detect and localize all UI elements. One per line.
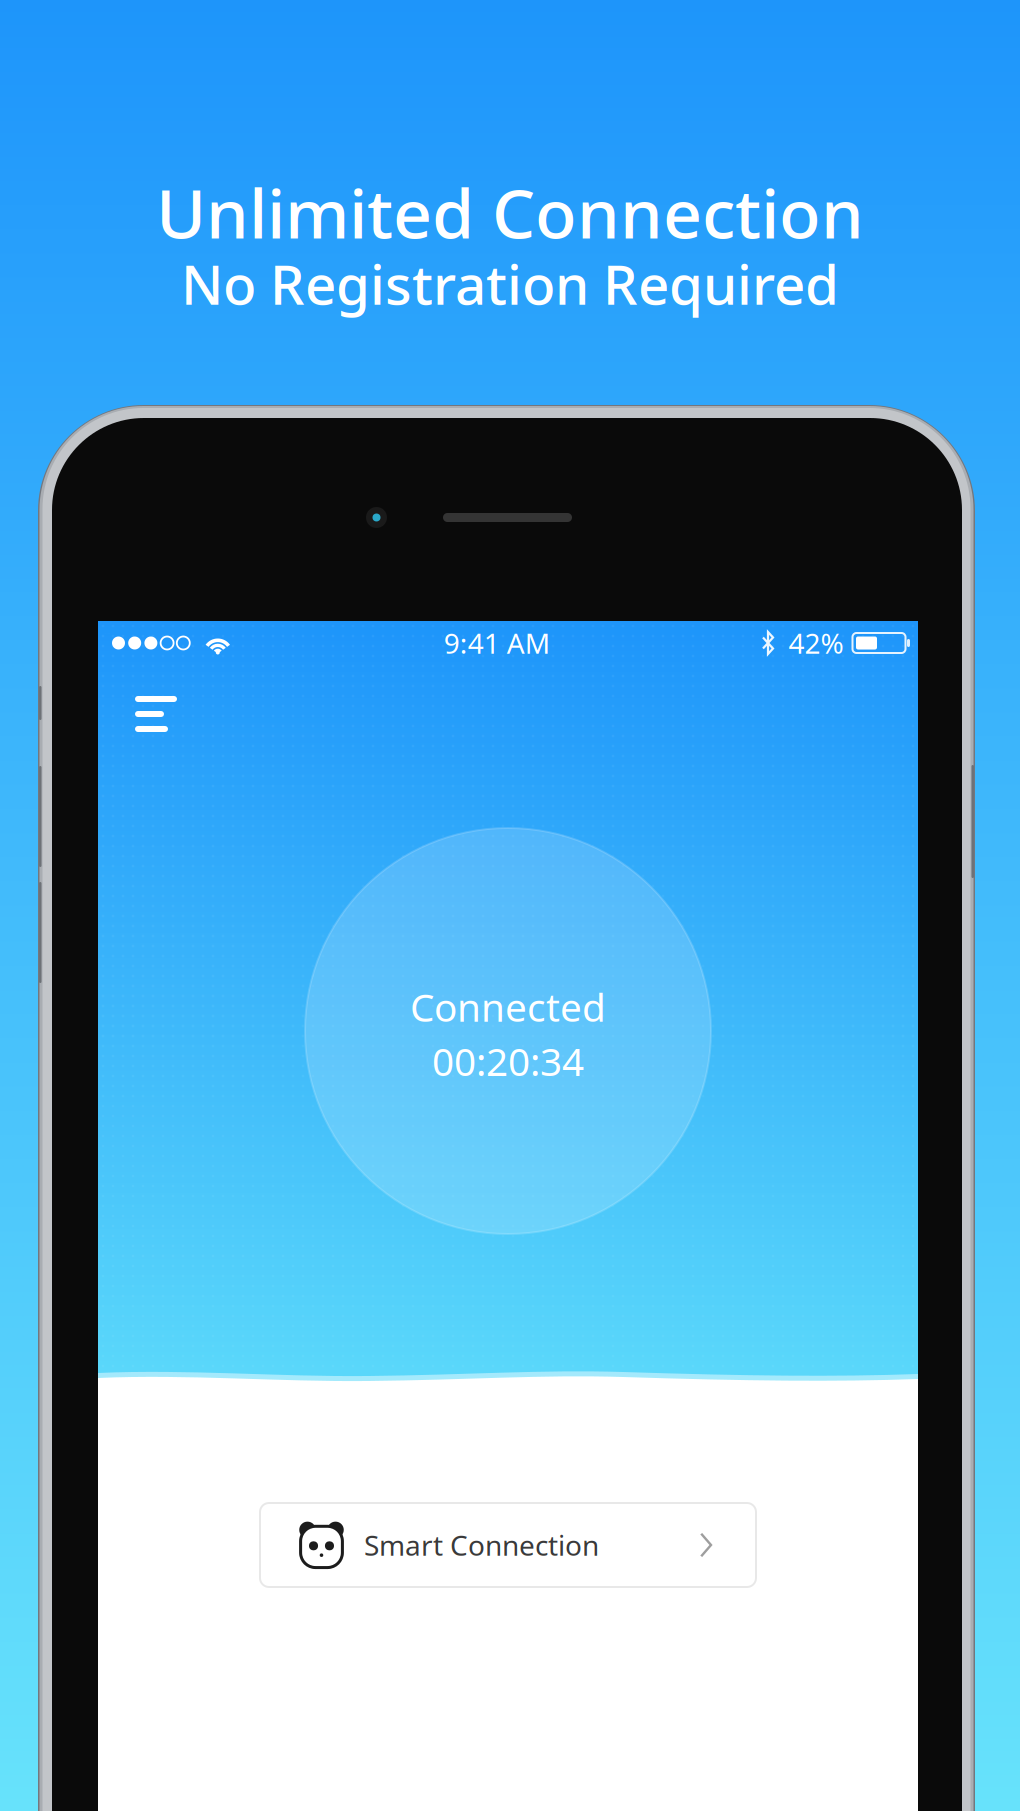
staticText: 42% [788, 624, 843, 662]
button[interactable]: Menu [98, 665, 205, 756]
staticText: 00:20:34 [432, 1035, 584, 1087]
staticText: Unlimited Connection [156, 167, 864, 257]
button[interactable]: Smart Connection [260, 1503, 756, 1587]
staticText: 9:41 AM [444, 624, 550, 662]
staticText: Smart Connection [364, 1526, 599, 1564]
staticText: No Registration Required [181, 247, 839, 320]
staticText: Connected [410, 981, 606, 1032]
